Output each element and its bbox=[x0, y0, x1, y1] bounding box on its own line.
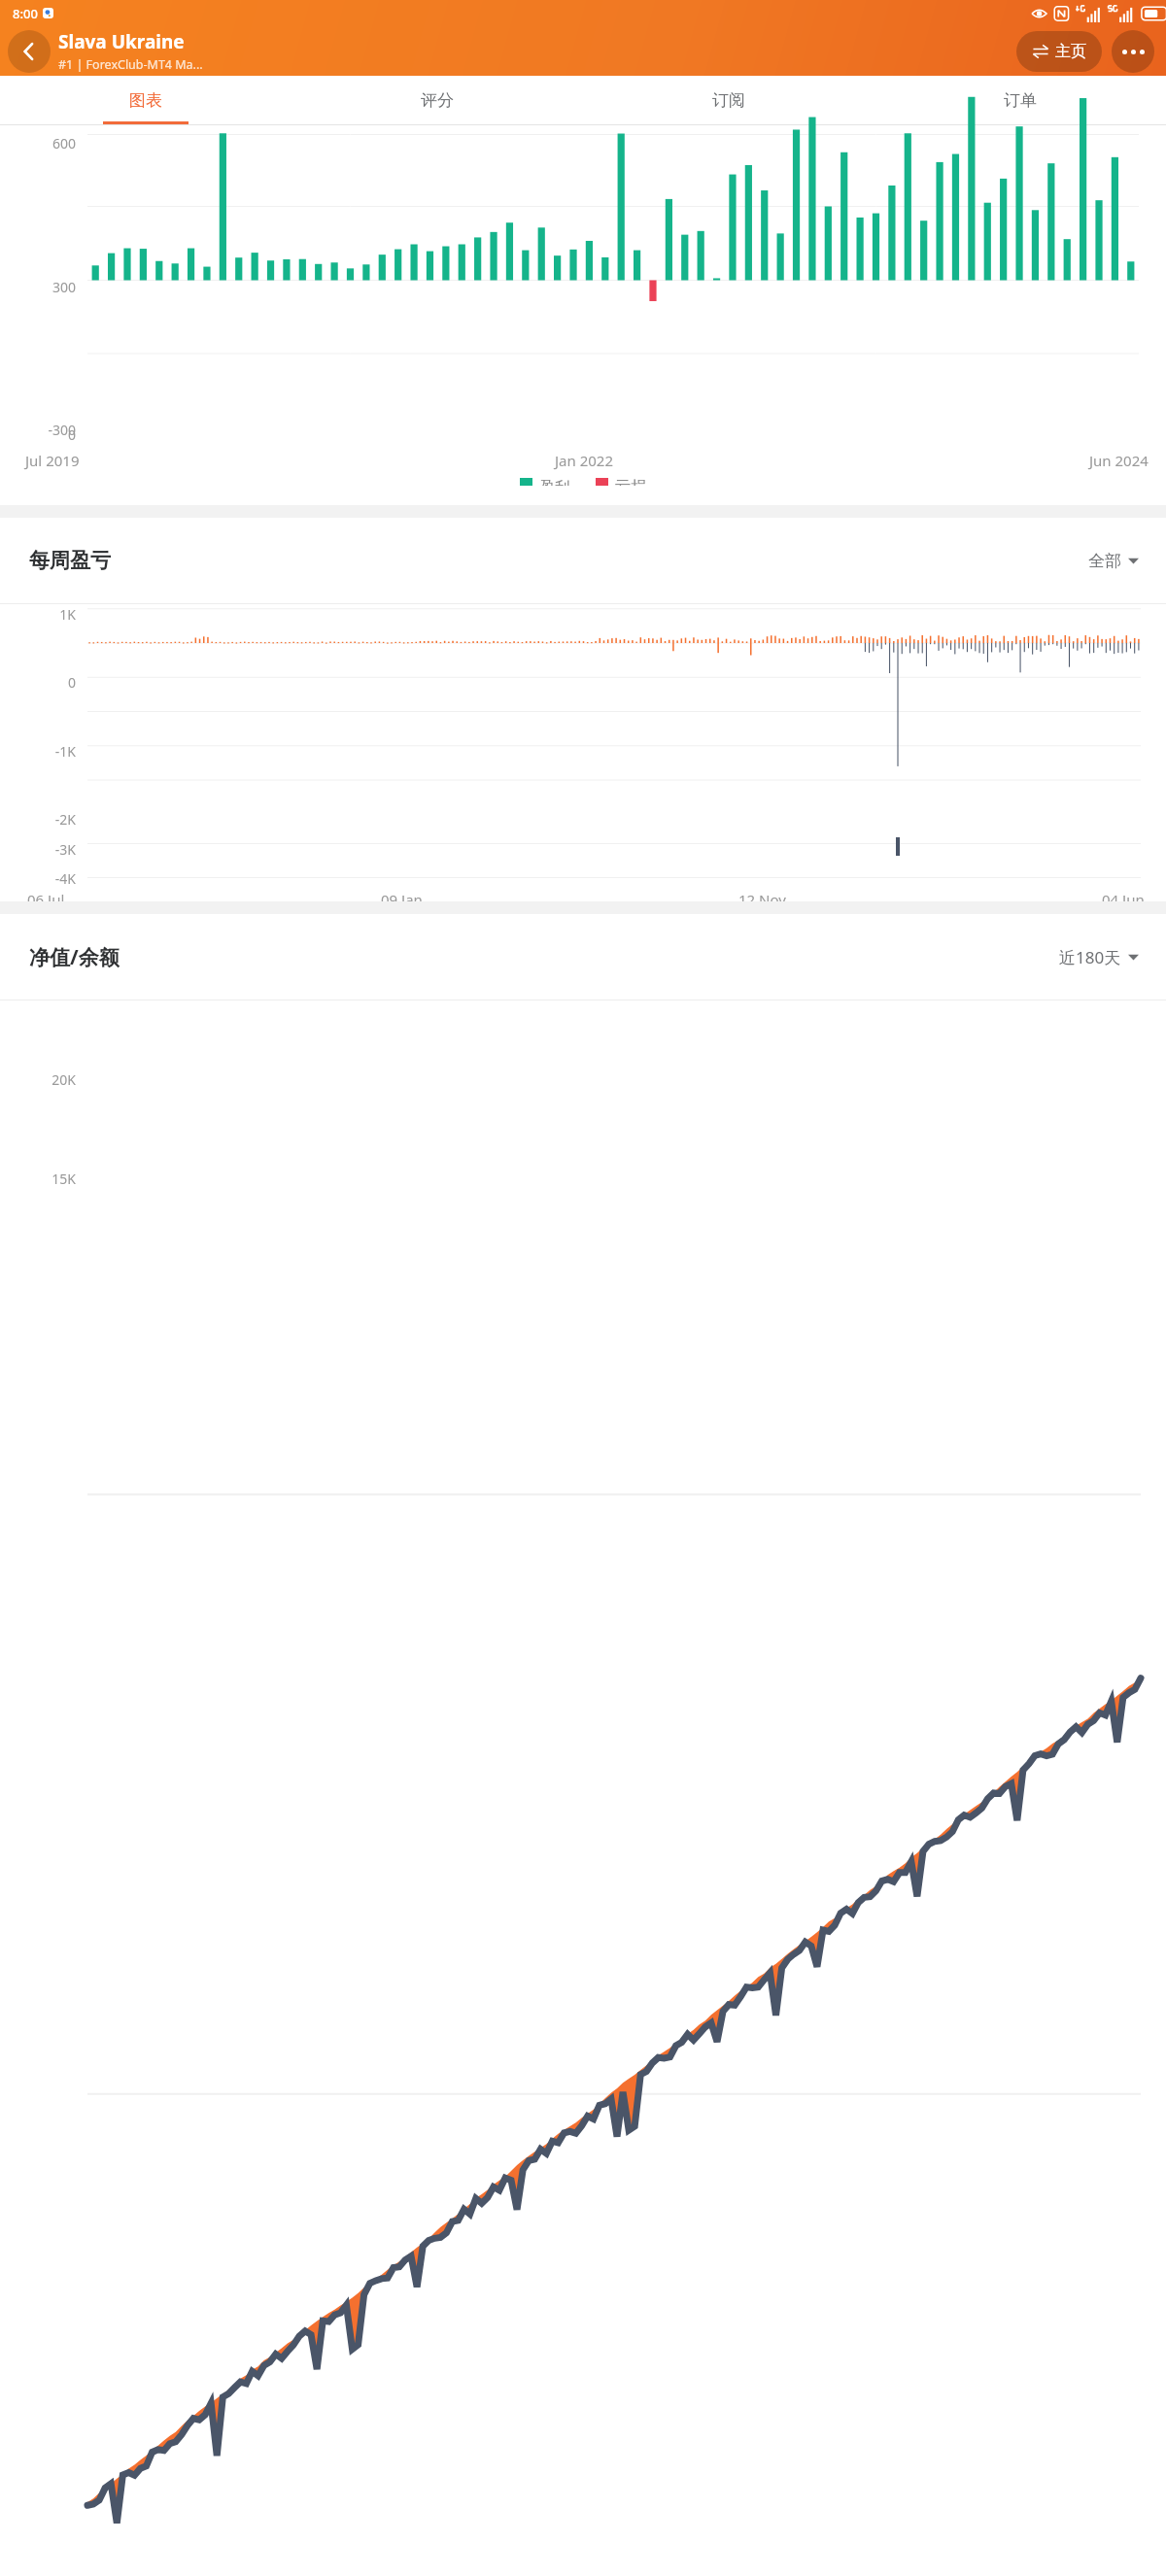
button[interactable]: 主页 bbox=[1016, 31, 1102, 72]
staticText: Jun 2024 bbox=[1089, 451, 1149, 470]
staticText: -300 bbox=[0, 421, 76, 439]
staticText: 300 bbox=[0, 278, 76, 296]
staticText: 1K bbox=[0, 605, 76, 624]
button[interactable]: 近180天 bbox=[1053, 940, 1145, 974]
staticText: 每周盈亏 bbox=[29, 548, 111, 573]
staticText: -2K bbox=[0, 810, 76, 829]
staticText: Slava Ukraine bbox=[58, 29, 185, 54]
staticText: 20K bbox=[0, 1070, 76, 1089]
button[interactable]: 订单 bbox=[874, 76, 1166, 124]
staticText: 全部 bbox=[1088, 551, 1121, 571]
button[interactable]: More options bbox=[1112, 30, 1154, 73]
staticText: 06 Jul bbox=[27, 890, 65, 901]
staticText: 图表 bbox=[129, 90, 162, 111]
staticText: 订阅 bbox=[712, 90, 745, 111]
button[interactable]: 订阅 bbox=[583, 76, 874, 124]
staticText: 净值/余额 bbox=[29, 943, 120, 971]
staticText: Jan 2022 bbox=[555, 451, 614, 470]
staticText: 0 bbox=[0, 425, 76, 444]
button[interactable]: 全部 bbox=[1082, 545, 1145, 577]
staticText: 15K bbox=[0, 1169, 76, 1188]
staticText: 12 Nov bbox=[738, 890, 786, 901]
staticText: Jul 2019 bbox=[25, 451, 80, 470]
staticText: 09 Jan bbox=[381, 890, 423, 901]
staticText: 主页 bbox=[1055, 42, 1086, 61]
button[interactable]: 盈利 bbox=[520, 478, 570, 486]
staticText: 亏损 bbox=[615, 478, 646, 486]
button[interactable]: 图表 bbox=[0, 76, 291, 124]
staticText: -3K bbox=[0, 840, 76, 859]
staticText: 8:00 bbox=[13, 5, 38, 22]
staticText: 盈利 bbox=[539, 478, 570, 486]
staticText: 600 bbox=[0, 134, 76, 153]
staticText: 订单 bbox=[1004, 90, 1037, 111]
staticText: #1 | ForexClub-MT4 Ma... bbox=[58, 56, 203, 73]
staticText: 0 bbox=[0, 673, 76, 692]
staticText: 04 Jun bbox=[1102, 890, 1145, 901]
button[interactable]: Back bbox=[8, 30, 51, 73]
staticText: -1K bbox=[0, 742, 76, 761]
staticText: 评分 bbox=[421, 90, 454, 111]
staticText: 近180天 bbox=[1059, 946, 1121, 968]
button[interactable]: 评分 bbox=[291, 76, 583, 124]
button[interactable]: 亏损 bbox=[596, 478, 646, 486]
staticText: -4K bbox=[0, 869, 76, 888]
